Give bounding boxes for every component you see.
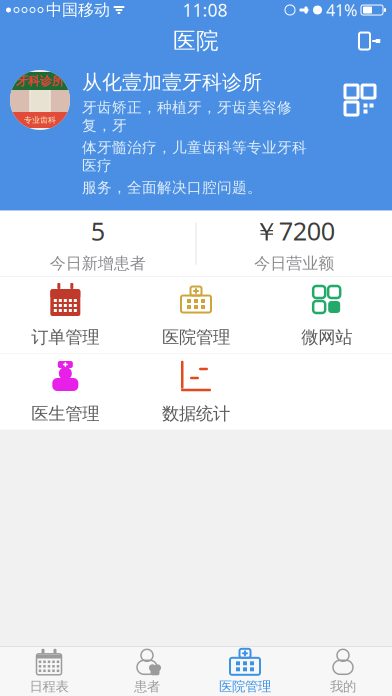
button[interactable]: 5: [0, 202, 195, 285]
button[interactable]: 日程表: [0, 647, 98, 696]
staticText: 医院管理: [219, 678, 271, 695]
staticText: 5: [91, 214, 105, 248]
button[interactable]: 退出登录: [348, 21, 392, 61]
button[interactable]: 我的: [294, 647, 392, 696]
staticText: 医院: [173, 27, 219, 55]
button[interactable]: 数据统计: [131, 354, 261, 430]
staticText: 体牙髓治疗，儿童齿科等专业牙科医疗: [82, 139, 307, 175]
staticText: 订单管理: [31, 326, 99, 348]
staticText: 我的: [330, 678, 356, 695]
button[interactable]: 二维码: [340, 70, 380, 130]
staticText: 服务，全面解决口腔问题。: [82, 179, 262, 197]
staticText: 医院管理: [162, 326, 230, 348]
button[interactable]: 微网站: [261, 277, 392, 353]
staticText: 专业齿科: [24, 115, 56, 125]
staticText: 牙齿矫正，种植牙，牙齿美容修复，牙: [82, 99, 292, 135]
button[interactable]: 患者: [98, 647, 196, 696]
button[interactable]: ￥7200: [196, 202, 392, 285]
staticText: 中国移动: [46, 0, 110, 20]
staticText: 数据统计: [162, 403, 230, 424]
button[interactable]: 医生管理: [0, 354, 131, 430]
staticText: 今日新增患者: [50, 254, 146, 273]
staticText: 医生管理: [31, 403, 99, 424]
staticText: 日程表: [29, 678, 68, 695]
button[interactable]: 医院管理: [131, 277, 261, 353]
staticText: 从化壹加壹牙科诊所: [82, 70, 262, 95]
button[interactable]: 订单管理: [0, 277, 131, 353]
button[interactable]: 医院管理: [196, 647, 294, 696]
staticText: 患者: [134, 678, 160, 695]
staticText: 微网站: [301, 326, 352, 348]
staticText: 11:08: [182, 0, 227, 21]
staticText: ￥7200: [254, 214, 335, 248]
staticText: 今日营业额: [254, 254, 334, 273]
staticText: 41%: [326, 0, 357, 21]
staticText: 牙科诊所: [16, 74, 64, 88]
